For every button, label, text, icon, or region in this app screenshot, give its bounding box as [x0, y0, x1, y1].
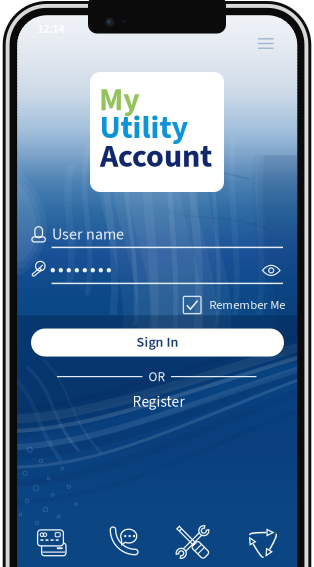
staticText: Account [100, 134, 212, 179]
staticText: 12:14 [37, 20, 64, 38]
button[interactable]: Remember Me [183, 294, 285, 316]
button[interactable]: Menu [248, 27, 284, 59]
staticText: My [99, 77, 140, 123]
button[interactable]: Register [114, 390, 204, 414]
staticText: Register [133, 391, 185, 413]
button[interactable]: Sign In [31, 328, 284, 356]
staticText: Sign In [136, 332, 178, 352]
staticText: Utility [99, 105, 188, 151]
staticText: User name [52, 223, 124, 246]
button[interactable]: Show password [256, 258, 286, 282]
button[interactable]: Recycling [230, 519, 296, 565]
button[interactable]: Contact us [89, 519, 155, 565]
button[interactable]: Services [159, 519, 225, 565]
staticText: OR [148, 367, 165, 386]
button[interactable]: Billing [18, 519, 84, 565]
staticText: Remember Me [209, 296, 285, 314]
